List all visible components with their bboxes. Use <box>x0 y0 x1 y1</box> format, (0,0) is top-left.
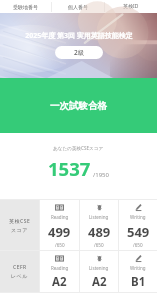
staticText: /650 <box>133 242 143 248</box>
staticText: Writing <box>130 265 146 271</box>
button[interactable]: CEFR <box>0 251 39 292</box>
button[interactable]: 個人番号 <box>52 0 104 13</box>
button[interactable]: 受験地番号 <box>0 0 51 13</box>
staticText: スコア <box>11 227 28 233</box>
button[interactable]: Listening <box>80 251 118 292</box>
staticText: 1537 <box>48 156 91 181</box>
other: Reading <box>55 254 64 263</box>
staticText: 549 <box>127 223 150 241</box>
other: Reading <box>55 203 64 212</box>
button[interactable]: Writing <box>119 251 157 292</box>
button[interactable]: 英検ID <box>105 0 157 13</box>
staticText: 個人番号 <box>68 4 88 10</box>
staticText: 一次試験合格 <box>50 100 107 112</box>
staticText: 英検CSE <box>9 218 31 225</box>
staticText: Reading <box>51 265 69 271</box>
other: Listening <box>95 254 104 263</box>
staticText: 2025年度 第3回 実用英語技能検定 <box>25 31 133 41</box>
button[interactable]: Reading <box>40 200 79 250</box>
staticText: /650 <box>94 242 104 248</box>
staticText: A2 <box>92 274 107 290</box>
other: Writing <box>134 254 143 263</box>
staticText: /650 <box>55 242 65 248</box>
staticText: あなたの英検CSEスコア <box>53 145 104 151</box>
staticText: 受験地番号 <box>13 4 38 10</box>
staticText: 英検ID <box>123 3 139 10</box>
staticText: Writing <box>130 214 146 220</box>
staticText: 499 <box>48 223 71 241</box>
staticText: Listening <box>89 265 109 271</box>
staticText: B1 <box>131 274 146 290</box>
staticText: A2 <box>52 274 67 290</box>
staticText: /1950 <box>93 171 109 179</box>
button[interactable]: Listening <box>80 200 118 250</box>
other: Listening <box>95 203 104 212</box>
button[interactable]: Reading <box>40 251 79 292</box>
staticText: Reading <box>51 214 69 220</box>
staticText: 489 <box>88 223 111 241</box>
staticText: Listening <box>89 214 109 220</box>
button[interactable]: 英検CSE <box>0 200 39 250</box>
staticText: CEFR <box>13 264 27 271</box>
staticText: 2級 <box>74 48 85 57</box>
button[interactable]: Writing <box>119 200 157 250</box>
other: Writing <box>134 203 143 212</box>
staticText: レベル <box>11 273 28 279</box>
